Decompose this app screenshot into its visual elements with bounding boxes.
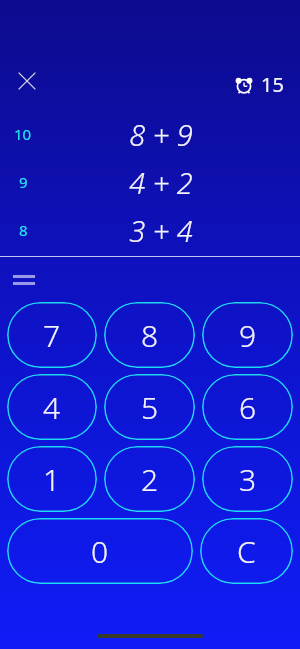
staticText: 0 — [91, 531, 109, 572]
button[interactable]: 0 — [7, 518, 193, 584]
staticText: 6 — [239, 387, 257, 428]
button[interactable]: C — [200, 518, 293, 584]
staticText: 1 — [43, 459, 61, 500]
staticText: 3 + 4 — [129, 211, 193, 250]
button[interactable]: 3 — [202, 446, 293, 512]
staticText: 3 — [239, 459, 257, 500]
staticText: 8 + 9 — [129, 115, 193, 154]
button[interactable]: 6 — [202, 374, 293, 440]
button[interactable]: 2 — [104, 446, 195, 512]
button[interactable]: 5 — [104, 374, 195, 440]
staticText: 10 — [14, 124, 32, 144]
button[interactable]: 15 — [234, 71, 284, 98]
button[interactable]: 10 — [0, 110, 300, 158]
staticText: 15 — [261, 71, 284, 98]
button[interactable]: 9 — [202, 302, 293, 368]
button[interactable]: 4 — [7, 374, 97, 440]
staticText: 5 — [141, 387, 159, 428]
button[interactable]: 9 — [0, 158, 300, 206]
button[interactable]: 8 — [104, 302, 195, 368]
staticText: 4 — [43, 387, 61, 428]
staticText: C — [237, 531, 256, 572]
button[interactable]: 7 — [7, 302, 97, 368]
staticText: 9 — [239, 315, 257, 356]
staticText: 8 — [19, 220, 28, 240]
staticText: 2 — [141, 459, 159, 500]
staticText: 8 — [141, 315, 159, 356]
staticText: 7 — [43, 315, 61, 356]
staticText: 4 + 2 — [129, 163, 193, 202]
staticText: 9 — [19, 172, 28, 192]
button[interactable]: Close — [10, 64, 44, 98]
button[interactable]: 1 — [7, 446, 97, 512]
button[interactable]: 8 — [0, 206, 300, 254]
